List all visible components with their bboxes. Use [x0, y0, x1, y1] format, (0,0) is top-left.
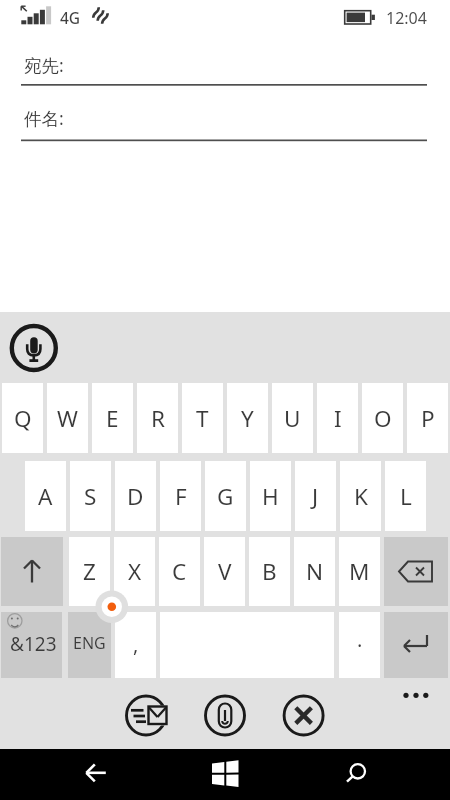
button[interactable] — [384, 537, 448, 606]
button[interactable]: Z — [69, 537, 110, 606]
button[interactable]: O — [362, 383, 403, 453]
staticText: H — [262, 481, 279, 512]
staticText: Z — [83, 556, 96, 587]
button[interactable]: Y — [227, 383, 268, 453]
staticText: T — [196, 403, 209, 434]
button[interactable]: G — [205, 461, 246, 531]
button[interactable]: E — [92, 383, 133, 453]
staticText: ENG — [73, 632, 106, 654]
button[interactable] — [205, 695, 245, 735]
button[interactable]: R — [137, 383, 178, 453]
button[interactable]: W — [47, 383, 88, 453]
staticText: W — [57, 403, 78, 434]
button[interactable]: V — [204, 537, 245, 606]
staticText: D — [127, 481, 144, 512]
button[interactable] — [384, 612, 448, 678]
button[interactable] — [126, 695, 166, 735]
staticText: V — [218, 556, 232, 587]
staticText: &123 — [10, 631, 57, 657]
button[interactable]: Q — [2, 383, 43, 453]
staticText: , — [133, 631, 139, 658]
button[interactable]: T — [182, 383, 223, 453]
staticText: Y — [241, 403, 254, 434]
button[interactable]: M — [339, 537, 380, 606]
staticText: 件名: — [24, 106, 64, 128]
staticText: S — [84, 481, 97, 512]
staticText: Q — [14, 403, 32, 434]
staticText: U — [284, 403, 301, 434]
button[interactable] — [76, 753, 116, 793]
button[interactable]: L — [385, 461, 426, 531]
staticText: N — [306, 556, 324, 587]
button[interactable]: D — [115, 461, 156, 531]
button[interactable]: 宛先: — [21, 53, 67, 75]
button[interactable] — [205, 753, 245, 793]
button[interactable]: A — [25, 461, 66, 531]
button[interactable] — [1, 537, 63, 606]
staticText: K — [354, 481, 368, 512]
staticText: A — [38, 481, 53, 512]
staticText: I — [334, 403, 342, 434]
staticText: O — [374, 403, 392, 434]
button[interactable]: J — [295, 461, 336, 531]
button[interactable] — [338, 753, 378, 793]
button[interactable] — [115, 612, 156, 678]
button[interactable]: I — [317, 383, 358, 453]
staticText: 宛先: — [24, 53, 64, 75]
staticText: B — [262, 556, 277, 587]
button[interactable]: B — [249, 537, 290, 606]
staticText: P — [421, 403, 435, 434]
button[interactable]: C — [159, 537, 200, 606]
staticText: C — [172, 556, 187, 587]
button[interactable] — [339, 612, 380, 678]
button[interactable]: P — [407, 383, 448, 453]
button[interactable] — [398, 683, 436, 707]
staticText: L — [400, 481, 412, 512]
staticText: E — [106, 403, 119, 434]
button[interactable] — [283, 695, 323, 735]
button[interactable] — [1, 612, 62, 678]
button[interactable]: U — [272, 383, 313, 453]
button[interactable]: S — [70, 461, 111, 531]
button[interactable]: K — [340, 461, 381, 531]
button[interactable]: F — [160, 461, 201, 531]
button[interactable]: N — [294, 537, 335, 606]
button[interactable]: H — [250, 461, 291, 531]
staticText: F — [175, 481, 187, 512]
button[interactable]: X — [114, 537, 155, 606]
staticText: G — [217, 481, 234, 512]
staticText: M — [349, 556, 370, 587]
button[interactable]: 件名: — [21, 106, 67, 128]
staticText: 12:04 — [386, 7, 427, 27]
button[interactable] — [11, 326, 56, 371]
button[interactable] — [68, 612, 111, 678]
staticText: 4G — [60, 7, 81, 27]
staticText: . — [357, 626, 363, 653]
staticText: J — [312, 481, 319, 512]
staticText: R — [151, 403, 165, 434]
staticText: X — [128, 556, 142, 587]
